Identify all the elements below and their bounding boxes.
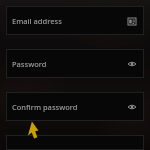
button[interactable]: Show password	[126, 58, 138, 70]
staticText: Confirm password	[12, 102, 78, 112]
button[interactable]: Email address	[6, 6, 144, 35]
button[interactable]: Show password	[126, 101, 138, 113]
staticText: Password	[12, 59, 47, 69]
button[interactable]: Contact suggestions	[126, 15, 138, 27]
staticText: Email address	[12, 16, 62, 26]
button[interactable]	[6, 135, 144, 150]
button[interactable]: Password	[6, 49, 144, 78]
button[interactable]: Confirm password	[6, 92, 144, 121]
